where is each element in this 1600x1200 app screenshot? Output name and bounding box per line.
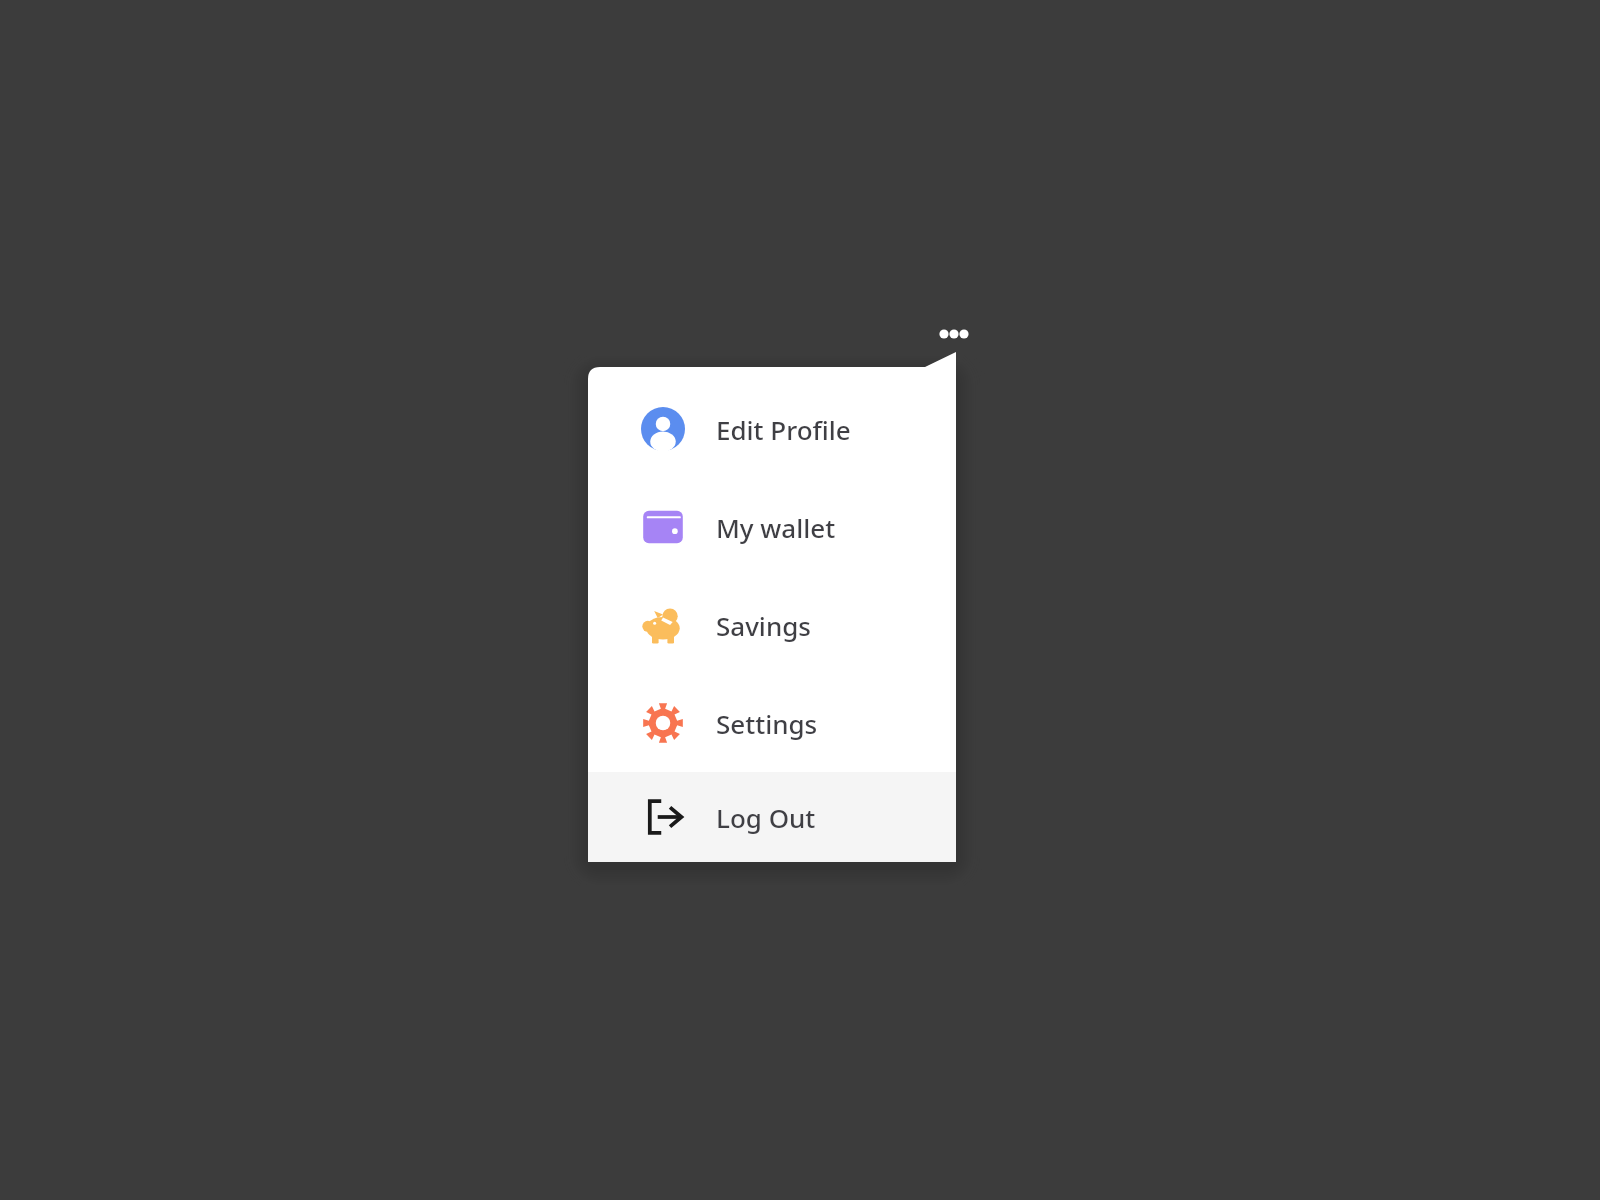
staticText: My wallet xyxy=(716,510,836,545)
button[interactable]: Log Out xyxy=(588,772,956,862)
button[interactable]: Edit Profile xyxy=(588,380,956,478)
staticText: Edit Profile xyxy=(716,412,851,447)
staticText: Log Out xyxy=(716,800,816,835)
staticText: Settings xyxy=(716,706,818,741)
button[interactable]: My wallet xyxy=(588,478,956,576)
button[interactable]: More options xyxy=(936,326,972,342)
staticText: Savings xyxy=(716,608,811,643)
button[interactable]: Settings xyxy=(588,674,956,772)
button[interactable]: Savings xyxy=(588,576,956,674)
